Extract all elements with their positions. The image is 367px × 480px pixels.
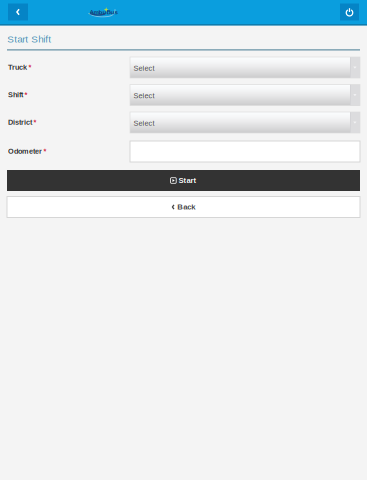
staticText: Truck <box>8 63 27 71</box>
staticText: AmbuBus <box>89 9 117 15</box>
button[interactable]: Start <box>7 170 360 191</box>
button[interactable]: Back <box>7 196 360 217</box>
staticText: Select <box>133 92 154 100</box>
staticText: * <box>24 90 27 99</box>
staticText: Odometer <box>8 147 42 155</box>
staticText: Shift <box>8 90 23 99</box>
staticText: Start <box>178 176 196 184</box>
button[interactable]: Log out <box>340 3 359 20</box>
staticText: Select <box>133 64 154 72</box>
staticText: Back <box>177 202 195 211</box>
staticText: Select <box>133 119 154 127</box>
staticText: * <box>33 118 36 126</box>
staticText: * <box>43 147 46 155</box>
button[interactable]: Back <box>8 3 28 20</box>
staticText: Start Shift <box>7 34 51 45</box>
staticText: * <box>28 63 31 71</box>
staticText: District <box>8 118 32 126</box>
